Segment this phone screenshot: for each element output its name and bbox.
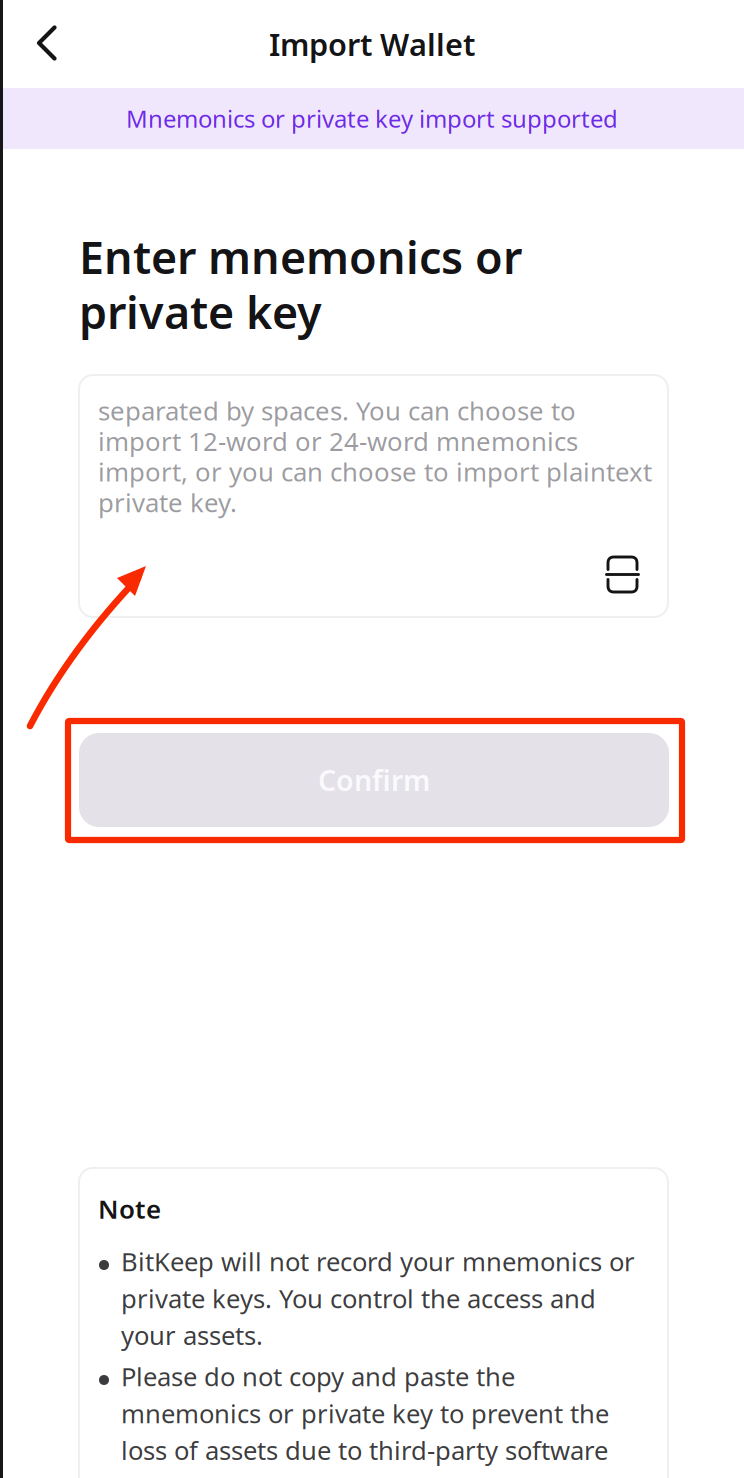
staticText: BitKeep will not record your mnemonics o… bbox=[121, 1244, 635, 1353]
staticText: Please do not copy and paste the mnemoni… bbox=[121, 1359, 609, 1468]
staticText: Enter mnemonics or private key bbox=[79, 226, 522, 342]
staticText: separated by spaces. You can choose to i… bbox=[98, 393, 652, 520]
staticText: Confirm bbox=[318, 761, 430, 799]
button[interactable]: Scan bbox=[605, 555, 640, 594]
button[interactable]: Back bbox=[14, 10, 80, 76]
staticText: Import Wallet bbox=[269, 23, 475, 65]
staticText: Note bbox=[98, 1191, 161, 1226]
staticText: Mnemonics or private key import supporte… bbox=[126, 102, 618, 135]
button[interactable]: Confirm bbox=[79, 733, 669, 827]
